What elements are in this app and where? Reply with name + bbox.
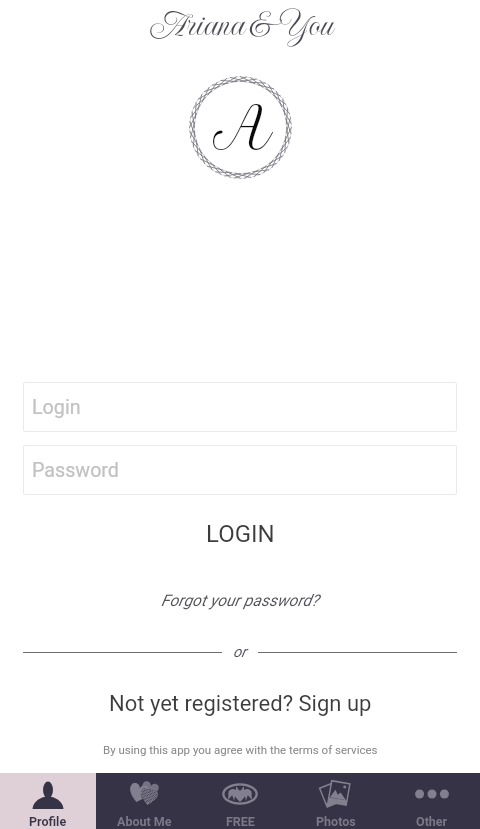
button[interactable]: Not yet registered? Sign up: [0, 685, 480, 723]
button[interactable]: About Me: [96, 773, 192, 829]
button[interactable]: Forgot your password?: [0, 583, 480, 617]
staticText: or: [233, 643, 247, 661]
staticText: Password: [32, 459, 119, 482]
staticText: FREE: [226, 814, 255, 829]
button[interactable]: Profile: [0, 773, 96, 829]
staticText: Photos: [316, 814, 356, 829]
button[interactable]: Other: [384, 773, 480, 829]
button[interactable]: LOGIN: [0, 513, 480, 555]
staticText: A: [213, 91, 273, 164]
staticText: Login: [32, 396, 81, 419]
staticText: Profile: [29, 814, 67, 829]
button[interactable]: FREE: [192, 773, 288, 829]
button[interactable]: Login: [23, 382, 457, 432]
staticText: Forgot your password?: [161, 591, 319, 610]
staticText: Not yet registered? Sign up: [109, 691, 372, 717]
staticText: By using this app you agree with the ter…: [103, 743, 378, 756]
staticText: LOGIN: [206, 520, 275, 548]
button[interactable]: Photos: [288, 773, 384, 829]
staticText: About Me: [117, 814, 172, 829]
button[interactable]: Password: [23, 445, 457, 495]
staticText: Other: [416, 814, 448, 829]
staticText: Ariana & You: [149, 2, 332, 48]
